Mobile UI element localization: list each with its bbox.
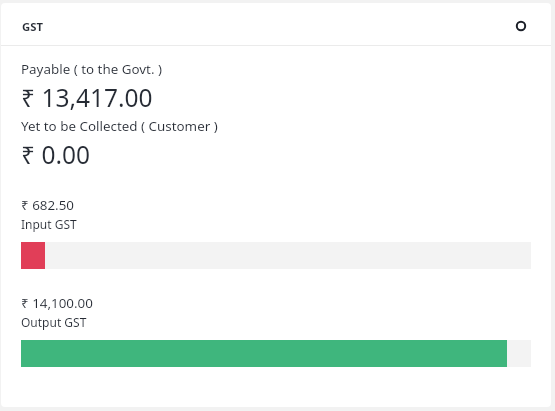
staticText: Input GST xyxy=(21,216,77,232)
staticText: ₹ 13,417.00 xyxy=(21,81,153,114)
staticText: ₹ 0.00 xyxy=(21,138,90,171)
button[interactable]: GST xyxy=(22,19,43,34)
staticText: Output GST xyxy=(21,314,87,330)
staticText: ₹ 682.50 xyxy=(21,196,75,214)
button[interactable]: Refresh xyxy=(510,15,532,37)
staticText: GST xyxy=(22,19,43,34)
staticText: Payable ( to the Govt. ) xyxy=(21,60,163,78)
staticText: Yet to be Collected ( Customer ) xyxy=(21,117,218,135)
staticText: ₹ 14,100.00 xyxy=(21,294,93,312)
